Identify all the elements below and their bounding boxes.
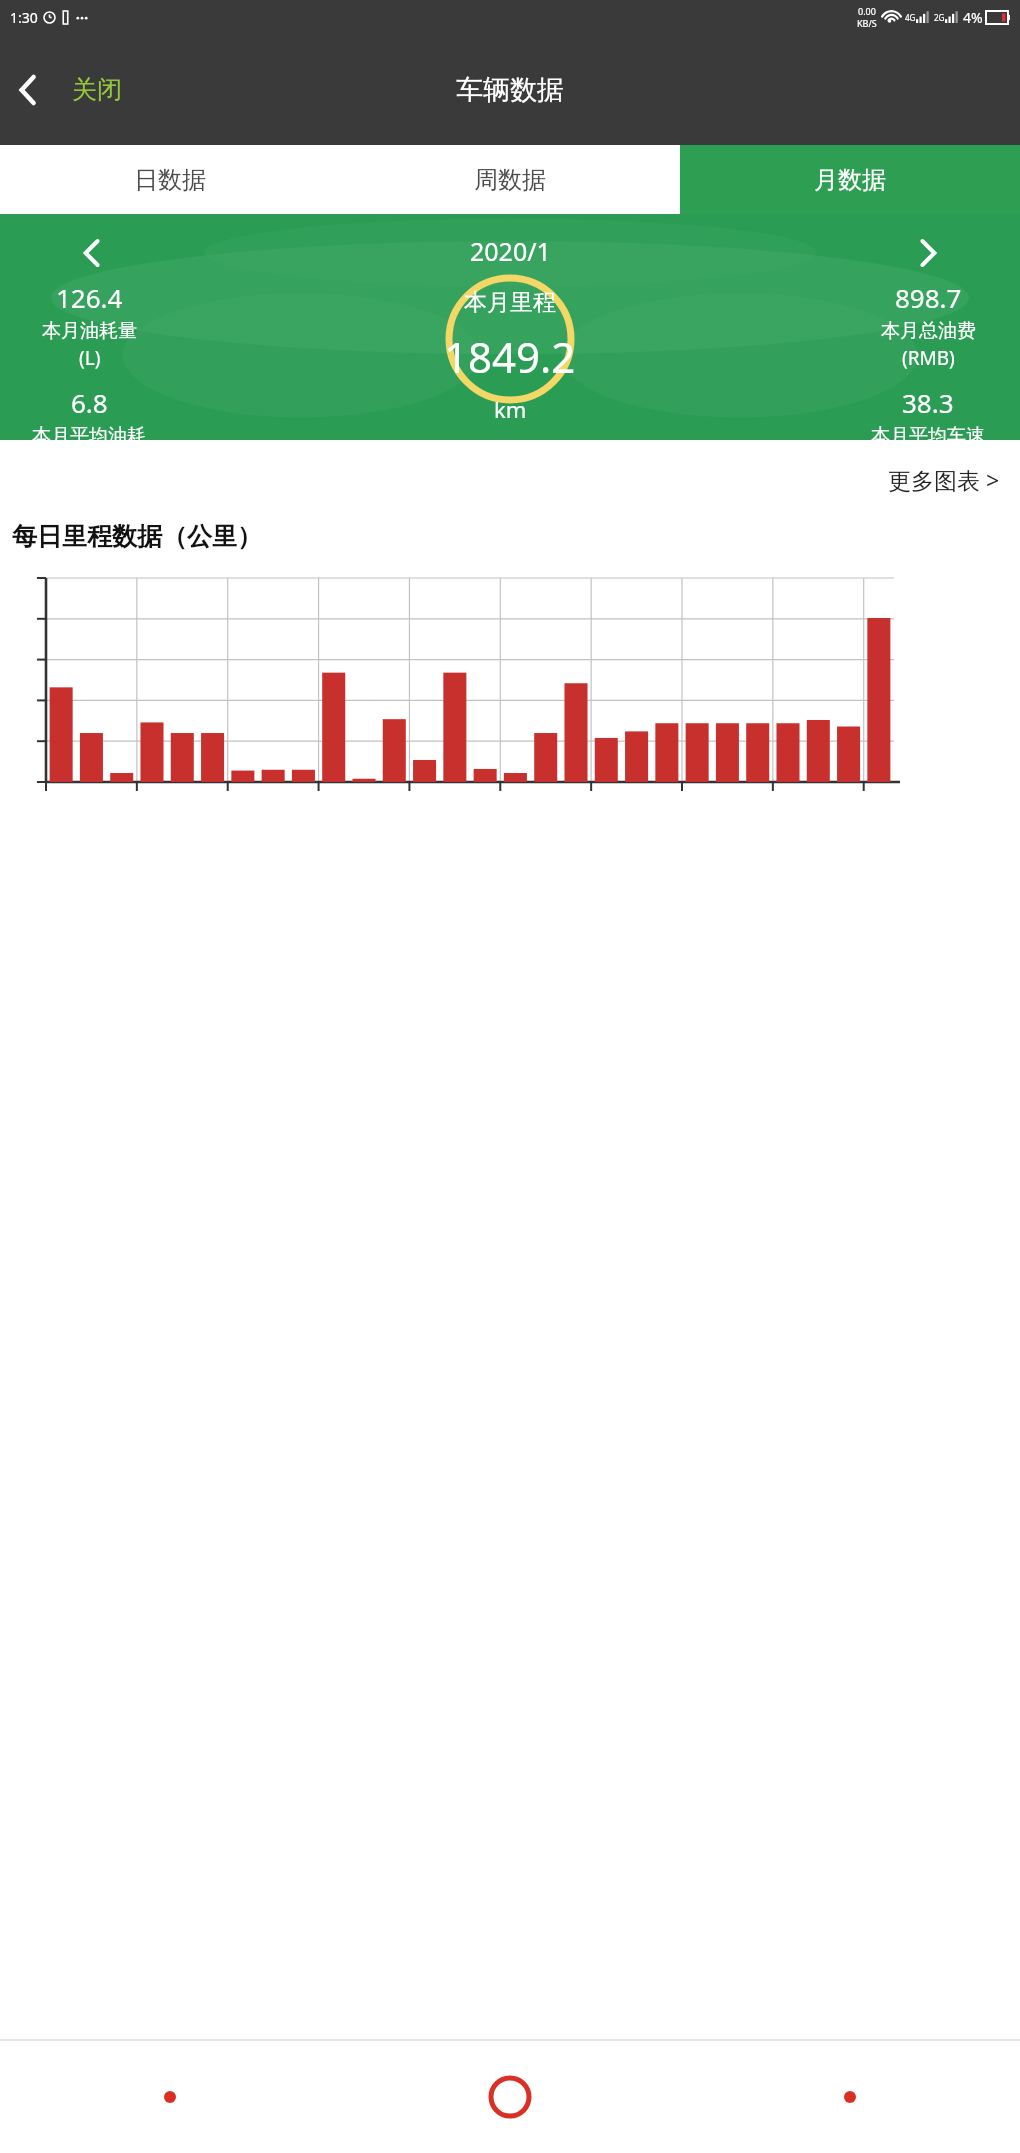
button[interactable]: 主页: [340, 2040, 680, 2153]
button[interactable]: 日数据: [0, 145, 340, 214]
staticText: 1:30: [10, 8, 38, 27]
staticText: 本月里程: [464, 288, 556, 317]
staticText: 本月平均油耗: [32, 424, 146, 440]
staticText: km: [494, 394, 527, 424]
staticText: 2G: [934, 12, 945, 23]
staticText: (L): [79, 345, 101, 371]
staticText: 周数据: [474, 165, 546, 195]
staticText: 126.4: [56, 280, 123, 315]
staticText: 898.7: [895, 280, 962, 315]
staticText: 2020/1: [470, 234, 551, 268]
staticText: 4G: [905, 12, 916, 23]
staticText: KB/S: [857, 17, 877, 29]
button[interactable]: 返回: [0, 2040, 340, 2153]
staticText: 本月总油费: [881, 319, 976, 343]
staticText: 6.8: [71, 385, 108, 420]
staticText: 更多图表 >: [888, 464, 1000, 495]
button[interactable]: 更多图表 >: [880, 458, 1008, 501]
button[interactable]: 最近任务: [680, 2040, 1020, 2153]
button[interactable]: 周数据: [340, 145, 680, 214]
staticText: 4%: [963, 8, 983, 27]
button[interactable]: 下一月: [906, 226, 950, 280]
staticText: 本月平均车速: [871, 424, 985, 440]
staticText: 38.3: [902, 385, 954, 420]
staticText: 0.00: [858, 5, 876, 17]
staticText: 每日里程数据（公里）: [12, 521, 262, 552]
button[interactable]: 返回: [0, 61, 56, 119]
staticText: 1849.2: [444, 328, 576, 385]
staticText: 月数据: [814, 165, 886, 195]
button[interactable]: 上一月: [70, 226, 114, 280]
button[interactable]: 月数据: [680, 145, 1020, 214]
staticText: 日数据: [134, 165, 206, 195]
staticText: 关闭: [72, 74, 122, 105]
staticText: 车辆数据: [456, 73, 564, 107]
staticText: (RMB): [902, 345, 955, 371]
button[interactable]: 关闭: [62, 66, 132, 113]
staticText: 本月油耗量: [42, 319, 137, 343]
